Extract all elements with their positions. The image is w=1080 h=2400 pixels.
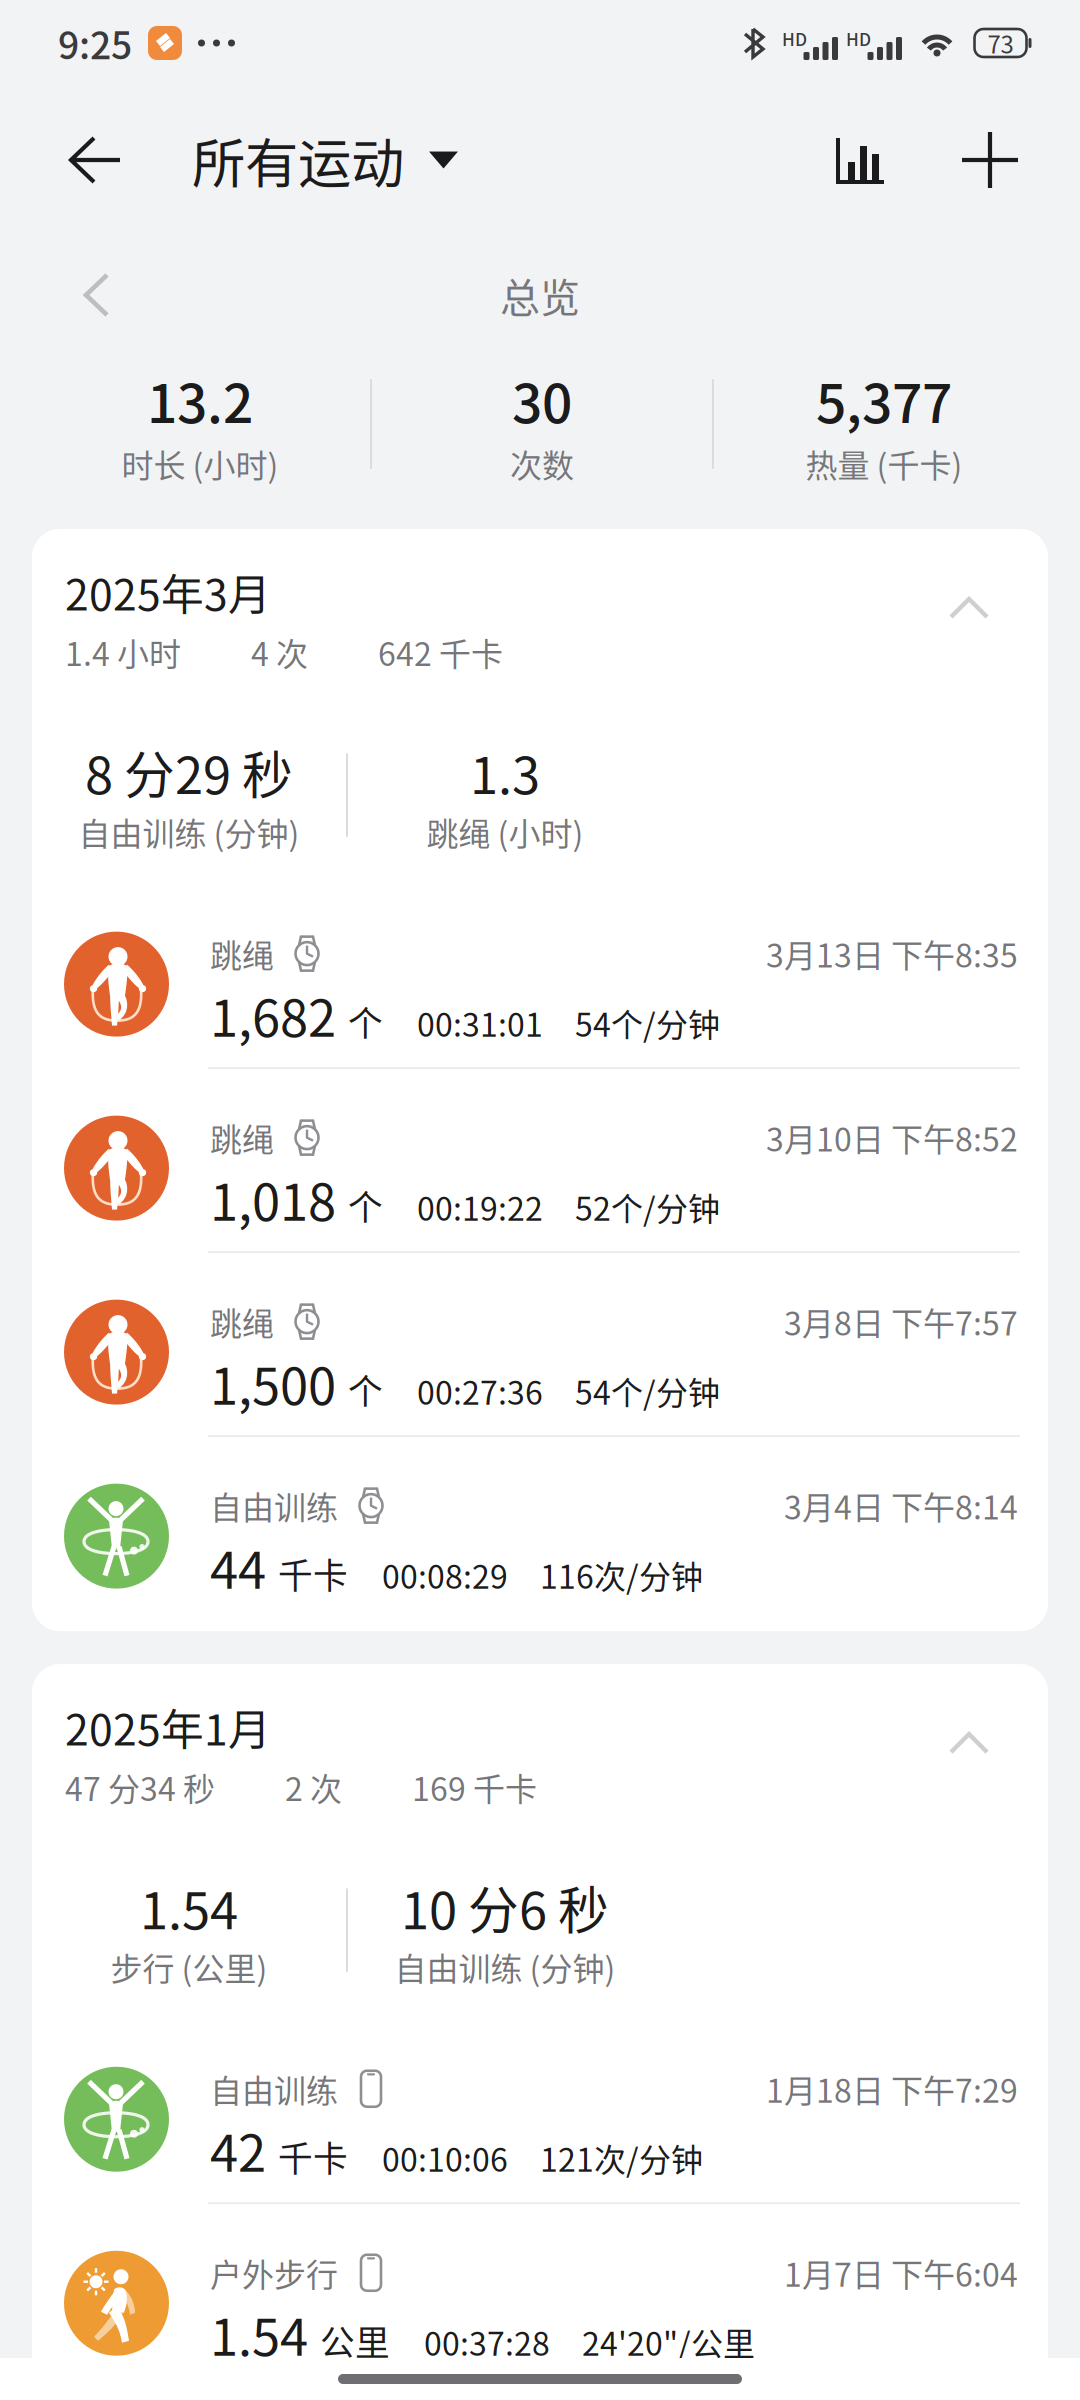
staticText: 13.2 [147,361,253,438]
button[interactable]: 自由训练 [32,1466,1048,1619]
staticText: 个 [348,1364,383,1415]
button[interactable]: Statistics [812,112,908,208]
staticText: 公里 [320,2316,390,2366]
button[interactable]: Add [942,112,1038,208]
staticText: 1月7日 下午6:04 [784,2250,1018,2296]
staticText: 1.3 [470,735,540,809]
staticText: 2025年3月 [65,561,271,623]
staticText: 热量 (千卡) [805,440,962,487]
staticText: 1,018 [210,1162,336,1235]
staticText: 30 [512,361,572,438]
staticText: 5,377 [816,361,952,438]
button[interactable]: Collapse [936,575,1002,641]
staticText: 9:25 [58,16,132,70]
staticText: 73 [987,26,1013,60]
button[interactable]: Previous period [56,248,126,318]
staticText: 千卡 [278,2132,348,2182]
staticText: HD [846,26,871,51]
staticText: 24'20"/公里 [582,2319,755,2365]
staticText: 千卡 [278,1548,348,1599]
staticText: 3月10日 下午8:52 [766,1114,1018,1161]
staticText: 1,500 [210,1346,336,1419]
staticText: HD [782,26,807,51]
staticText: 47 分34 秒 2 次 169 千卡 [65,1764,537,1810]
staticText: 00:10:06 [382,2135,508,2181]
staticText: 00:19:22 [417,1184,543,1230]
button[interactable]: Collapse [936,1710,1002,1776]
staticText: 10 分6 秒 [401,1870,609,1944]
staticText: 时长 (小时) [121,440,278,487]
staticText: 54个/分钟 [575,1368,720,1414]
staticText: 1.54 [210,2297,308,2370]
staticText: 3月4日 下午8:14 [784,1482,1018,1529]
staticText: 自由训练 [210,2066,338,2112]
staticText: 1.54 [140,1870,238,1944]
button[interactable]: 跳绳 [32,914,1048,1067]
staticText: 3月13日 下午8:35 [766,930,1018,977]
staticText: 42 [210,2113,266,2186]
staticText: 2025年1月 [65,1696,271,1758]
staticText: 自由训练 [210,1482,338,1529]
staticText: 跳绳 [210,1298,274,1345]
staticText: 121次/分钟 [540,2135,703,2181]
staticText: 总览 [500,266,580,324]
staticText: 54个/分钟 [575,1000,720,1046]
button[interactable]: 自由训练 [32,2049,1048,2202]
staticText: 跳绳 [210,930,274,977]
staticText: 44 [210,1530,266,1603]
button[interactable]: 跳绳 [32,1098,1048,1251]
staticText: 自由训练 (分钟) [78,809,299,855]
staticText: 1,682 [210,978,336,1051]
staticText: 步行 (公里) [110,1944,267,1990]
staticText: 次数 [510,440,574,487]
staticText: 3月8日 下午7:57 [784,1298,1018,1345]
staticText: 自由训练 (分钟) [394,1944,615,1990]
staticText: 个 [348,996,383,1047]
staticText: 跳绳 (小时) [426,809,583,855]
staticText: 00:27:36 [417,1368,543,1414]
staticText: 户外步行 [210,2250,338,2296]
staticText: 1月18日 下午7:29 [766,2066,1018,2112]
button[interactable]: 跳绳 [32,1282,1048,1435]
button[interactable]: 所有运动 [192,112,458,208]
staticText: 所有运动 [192,121,404,199]
staticText: 1.4 小时 4 次 642 千卡 [65,629,503,675]
button[interactable]: 户外步行 [32,2233,1048,2386]
staticText: 跳绳 [210,1114,274,1161]
staticText: 52个/分钟 [575,1184,720,1230]
staticText: 00:37:28 [424,2319,550,2365]
button[interactable]: Back [44,112,140,208]
staticText: 116次/分钟 [540,1552,703,1598]
staticText: 00:08:29 [382,1552,508,1598]
staticText: 个 [348,1180,383,1231]
staticText: 00:31:01 [417,1000,543,1046]
staticText: 8 分29 秒 [85,735,293,809]
